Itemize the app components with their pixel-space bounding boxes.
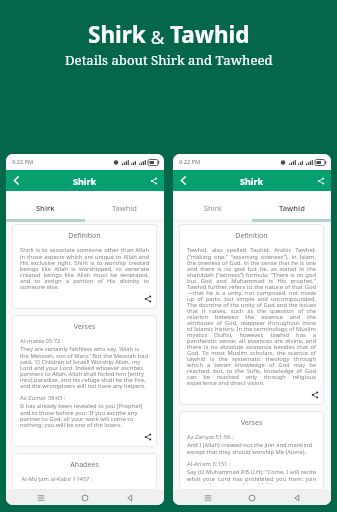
- staticText: Definition: [187, 231, 316, 241]
- button[interactable]: Tawhid: [252, 191, 331, 219]
- button[interactable]: Home: [75, 490, 95, 505]
- staticText: Details about Shirk and Tawheed: [65, 51, 273, 69]
- staticText: Say (O Muhammad P.B.U.H): “Come, I will …: [187, 468, 316, 484]
- staticText: Shirk: [204, 203, 222, 213]
- staticText: Al-An'am 6:151 :: [187, 460, 231, 468]
- staticText: Tawhid: [112, 203, 137, 213]
- staticText: Al-maida 05:72 :: [20, 337, 64, 345]
- staticText: Shirk is to associate someone other than…: [20, 246, 149, 291]
- button[interactable]: Recents: [198, 490, 218, 505]
- staticText: Az-Zariyat 51:56 :: [187, 433, 234, 441]
- staticText: Al-Mu'jam al-Kabir 11457 :: [20, 475, 93, 483]
- button[interactable]: Back: [173, 170, 193, 191]
- staticText: Verses: [187, 418, 316, 428]
- button[interactable]: Back: [6, 170, 26, 191]
- staticText: Shirk: [88, 19, 146, 50]
- button[interactable]: Back: [287, 490, 307, 505]
- button[interactable]: Back: [120, 490, 140, 505]
- button[interactable]: Home: [242, 490, 262, 505]
- staticText: 9:22 PM: [179, 158, 201, 166]
- button[interactable]: Share: [144, 433, 152, 441]
- staticText: Verses: [20, 322, 149, 332]
- staticText: Ahadees: [20, 460, 149, 470]
- button[interactable]: Share: [144, 295, 152, 303]
- staticText: Shirk: [73, 175, 97, 187]
- button[interactable]: Shirk: [173, 191, 252, 219]
- button[interactable]: Recents: [31, 490, 51, 505]
- staticText: Definition: [20, 231, 149, 241]
- button[interactable]: Share: [311, 391, 319, 399]
- staticText: Shirk: [240, 175, 264, 187]
- button[interactable]: Share: [311, 170, 331, 191]
- staticText: 9:22 PM: [12, 158, 34, 166]
- button[interactable]: Shirk: [6, 191, 85, 219]
- staticText: They are certainly faithless who say, 'A…: [20, 345, 149, 390]
- staticText: Tawhid, also spelled Tauhid, Arabic Tawh…: [187, 246, 316, 387]
- button[interactable]: Tawhid: [85, 191, 164, 219]
- staticText: Az-Zumar 39:65 :: [20, 394, 66, 402]
- staticText: It has already been revealed to you [Pro…: [20, 402, 149, 429]
- staticText: Shirk: [36, 203, 55, 213]
- staticText: Tawhid: [170, 19, 250, 50]
- staticText: Tawhid: [279, 203, 305, 213]
- staticText: And I (Allah) created not the jinn and m…: [187, 441, 316, 456]
- staticText: &: [146, 24, 170, 49]
- button[interactable]: Share: [144, 170, 164, 191]
